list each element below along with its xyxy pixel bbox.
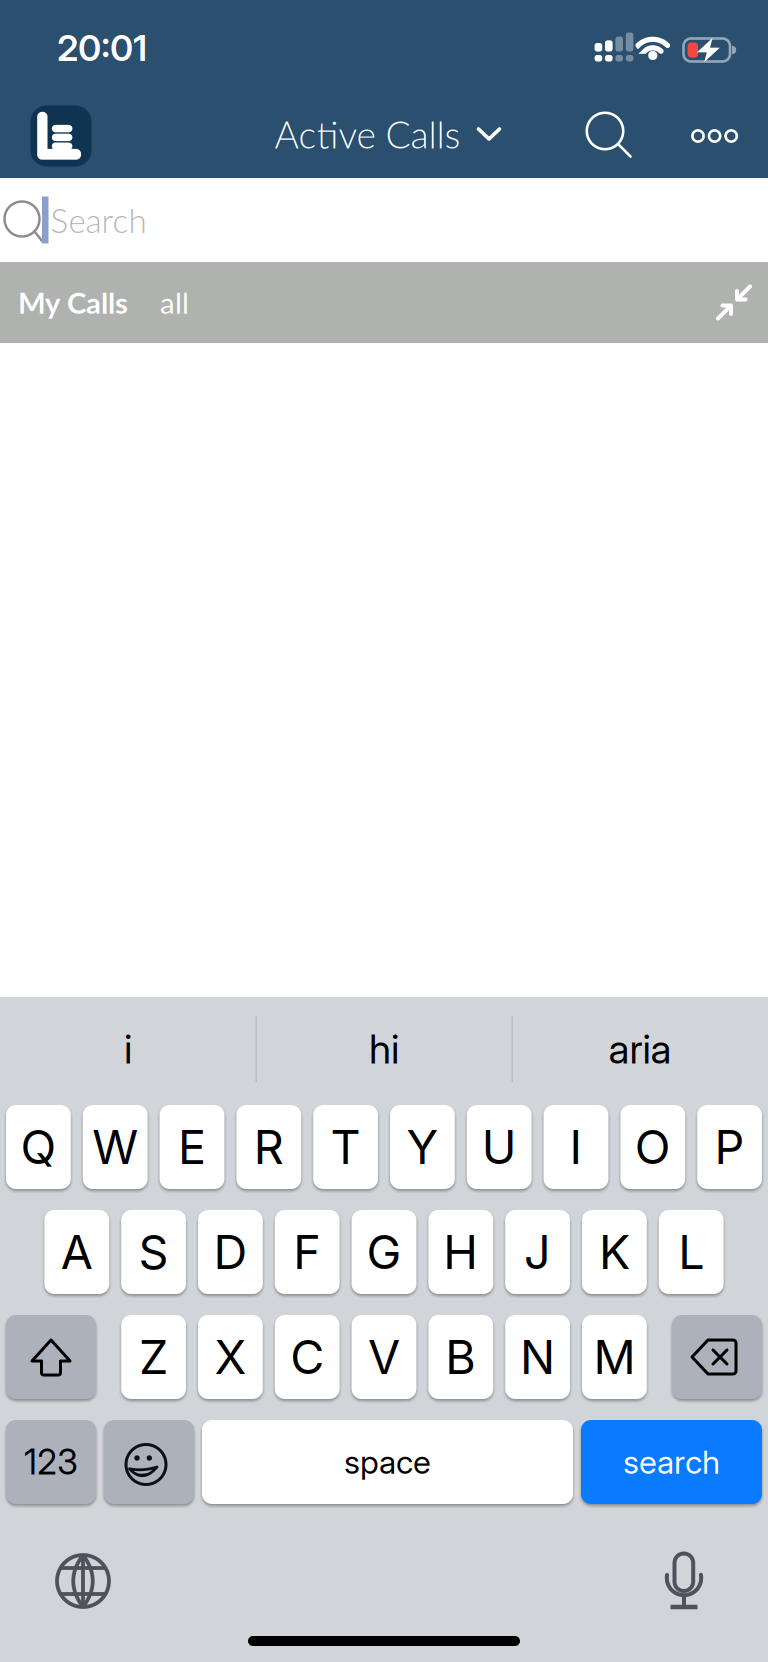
staticText: search <box>623 1443 720 1481</box>
button[interactable]: Delete <box>672 1315 762 1399</box>
button[interactable]: K <box>582 1210 647 1294</box>
button[interactable]: G <box>352 1210 416 1294</box>
button[interactable]: W <box>83 1105 148 1189</box>
button[interactable]: 123 <box>6 1420 96 1504</box>
staticText: C <box>290 1329 324 1385</box>
button[interactable]: D <box>198 1210 263 1294</box>
staticText: Y <box>406 1119 438 1175</box>
staticText: My Calls <box>18 285 128 320</box>
button[interactable]: search <box>581 1420 762 1504</box>
button[interactable]: U <box>467 1105 532 1189</box>
staticText: D <box>213 1224 247 1280</box>
button[interactable]: N <box>505 1315 570 1399</box>
staticText: Active Calls <box>274 112 460 156</box>
staticText: A <box>61 1224 93 1280</box>
button[interactable]: P <box>697 1105 762 1189</box>
staticText: X <box>214 1329 246 1385</box>
button[interactable]: hi <box>259 1007 509 1091</box>
staticText: I <box>569 1119 582 1175</box>
staticText: M <box>593 1329 635 1385</box>
staticText: E <box>178 1119 206 1175</box>
button[interactable]: Emoji <box>104 1420 194 1504</box>
button[interactable]: Next keyboard <box>55 1553 111 1609</box>
button[interactable]: R <box>236 1105 301 1189</box>
staticText: L <box>678 1224 704 1280</box>
button[interactable]: Active Calls <box>274 112 501 156</box>
button[interactable]: V <box>352 1315 416 1399</box>
button[interactable]: L <box>659 1210 724 1294</box>
staticText: U <box>482 1119 517 1175</box>
staticText: P <box>715 1119 745 1175</box>
staticText: i <box>124 1025 132 1073</box>
button[interactable]: aria <box>515 1007 765 1091</box>
button[interactable]: space <box>202 1420 573 1504</box>
staticText: K <box>599 1224 630 1280</box>
button[interactable]: O <box>620 1105 685 1189</box>
staticText: N <box>520 1329 555 1385</box>
button[interactable]: Search <box>585 111 635 161</box>
button[interactable]: i <box>3 1007 253 1091</box>
staticText: Search <box>50 200 146 240</box>
button[interactable]: Search field <box>0 178 768 262</box>
button[interactable]: Z <box>121 1315 186 1399</box>
staticText: O <box>635 1119 671 1175</box>
button[interactable]: Dictate <box>660 1552 708 1610</box>
button[interactable]: Shift <box>6 1315 96 1399</box>
button[interactable]: S <box>121 1210 186 1294</box>
button[interactable]: X <box>198 1315 263 1399</box>
staticText: hi <box>369 1025 399 1073</box>
button[interactable]: J <box>505 1210 570 1294</box>
button[interactable]: F <box>275 1210 340 1294</box>
button[interactable]: T <box>313 1105 378 1189</box>
staticText: 123 <box>24 1442 78 1482</box>
staticText: V <box>368 1329 400 1385</box>
staticText: Z <box>139 1329 168 1385</box>
staticText: aria <box>608 1025 671 1073</box>
staticText: all <box>160 285 189 320</box>
button[interactable]: I <box>544 1105 608 1189</box>
button[interactable]: B <box>428 1315 493 1399</box>
button[interactable]: More <box>690 128 739 144</box>
staticText: 20:01 <box>57 27 147 69</box>
button[interactable]: Q <box>6 1105 71 1189</box>
button[interactable]: Y <box>390 1105 455 1189</box>
staticText: H <box>443 1224 478 1280</box>
staticText: R <box>254 1119 284 1175</box>
staticText: S <box>139 1224 169 1280</box>
button[interactable]: E <box>160 1105 224 1189</box>
button[interactable]: A <box>44 1210 109 1294</box>
button[interactable]: M <box>582 1315 647 1399</box>
staticText: T <box>331 1119 361 1175</box>
staticText: space <box>344 1443 431 1481</box>
staticText: J <box>524 1224 551 1280</box>
staticText: Q <box>20 1119 56 1175</box>
staticText: F <box>293 1224 321 1280</box>
staticText: G <box>366 1224 401 1280</box>
staticText: B <box>445 1329 476 1385</box>
button[interactable]: C <box>275 1315 340 1399</box>
staticText: W <box>92 1119 138 1175</box>
button[interactable]: H <box>428 1210 493 1294</box>
button[interactable]: Collapse <box>717 285 751 319</box>
button[interactable]: Home <box>30 105 91 166</box>
